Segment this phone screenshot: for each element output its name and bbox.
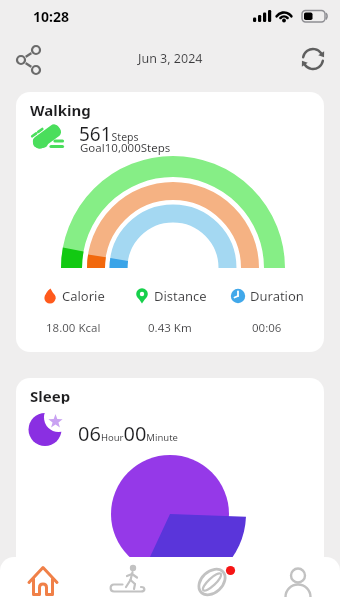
button[interactable]: Sleep bbox=[16, 378, 324, 604]
staticText: Distance bbox=[154, 287, 207, 305]
button[interactable] bbox=[170, 557, 255, 604]
staticText: 561Steps bbox=[79, 121, 139, 147]
staticText: Goal10,000Steps bbox=[80, 140, 171, 156]
staticText: 00:06 bbox=[252, 320, 282, 336]
staticText: 0.43 Km bbox=[148, 320, 192, 336]
staticText: 06Hour00Minute bbox=[78, 420, 178, 447]
staticText: Walking bbox=[30, 100, 91, 120]
staticText: 10:28 bbox=[33, 7, 69, 26]
button[interactable] bbox=[255, 557, 340, 604]
button[interactable] bbox=[0, 557, 85, 604]
button[interactable] bbox=[297, 43, 329, 75]
staticText: 18.00 Kcal bbox=[46, 320, 101, 336]
button[interactable] bbox=[14, 44, 46, 76]
staticText: Jun 3, 2024 bbox=[138, 50, 203, 67]
button[interactable] bbox=[85, 557, 170, 604]
button[interactable]: Walking bbox=[16, 92, 324, 352]
staticText: Calorie bbox=[62, 287, 105, 305]
staticText: Duration bbox=[250, 287, 304, 305]
staticText: Sleep bbox=[30, 386, 71, 406]
